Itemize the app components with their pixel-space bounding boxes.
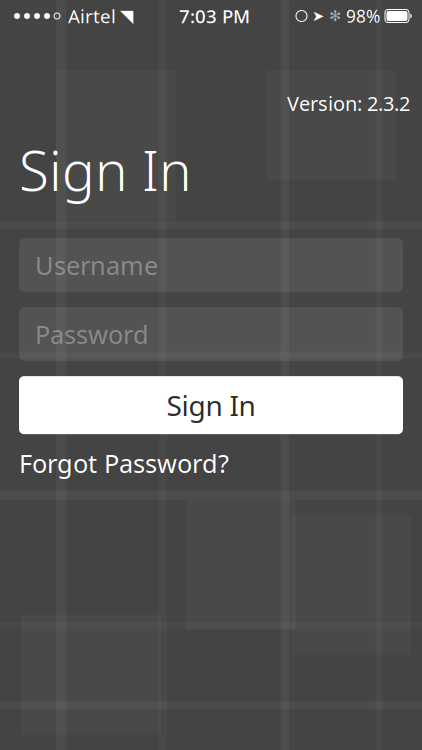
staticText: Sign In [19, 134, 192, 206]
staticText: ➤ [312, 8, 324, 24]
staticText: 7:03 PM [179, 4, 250, 28]
staticText: Version: 2.3.2 [287, 90, 410, 117]
staticText: Password [35, 317, 149, 351]
staticText: ◥ [120, 6, 133, 26]
staticText: Username [35, 248, 158, 282]
staticText: Sign In [166, 387, 255, 424]
staticText: Forgot Password? [19, 446, 229, 480]
staticText: Airtel [68, 4, 116, 28]
button[interactable]: Forgot Password? [19, 448, 229, 478]
staticText: ✻ [329, 8, 341, 24]
staticText: 98% [346, 4, 380, 27]
button[interactable]: Sign In [19, 376, 403, 434]
